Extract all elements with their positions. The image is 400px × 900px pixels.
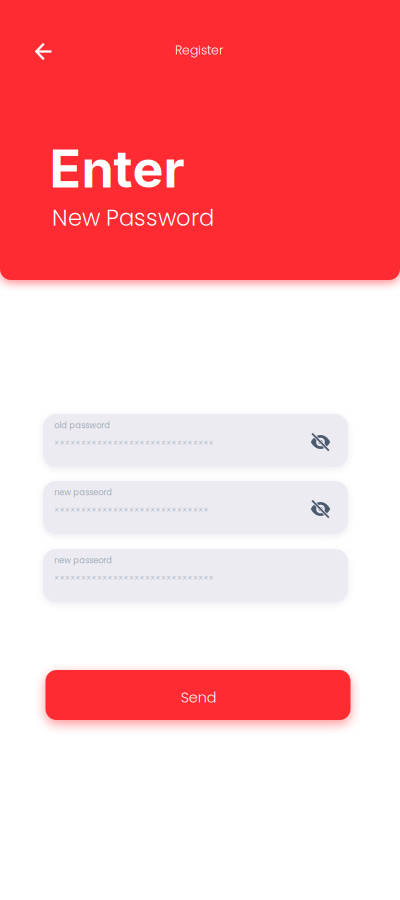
button[interactable]: Back: [22, 29, 66, 73]
staticText: ×××××××××××××××××××××××××××××: [54, 505, 208, 516]
staticText: old password: [54, 419, 110, 431]
staticText: new passeord: [54, 554, 112, 566]
button[interactable]: Show password: [297, 482, 343, 535]
staticText: Send: [181, 687, 217, 708]
button[interactable]: Send: [45, 670, 350, 720]
button[interactable]: Show password: [297, 415, 343, 468]
staticText: ××××××××××××××××××××××××××××××: [54, 438, 214, 449]
staticText: Enter: [50, 137, 185, 200]
staticText: new passeord: [54, 486, 112, 498]
staticText: ××××××××××××××××××××××××××××××: [54, 573, 214, 584]
staticText: New Password: [52, 202, 214, 234]
staticText: Register: [175, 41, 224, 59]
